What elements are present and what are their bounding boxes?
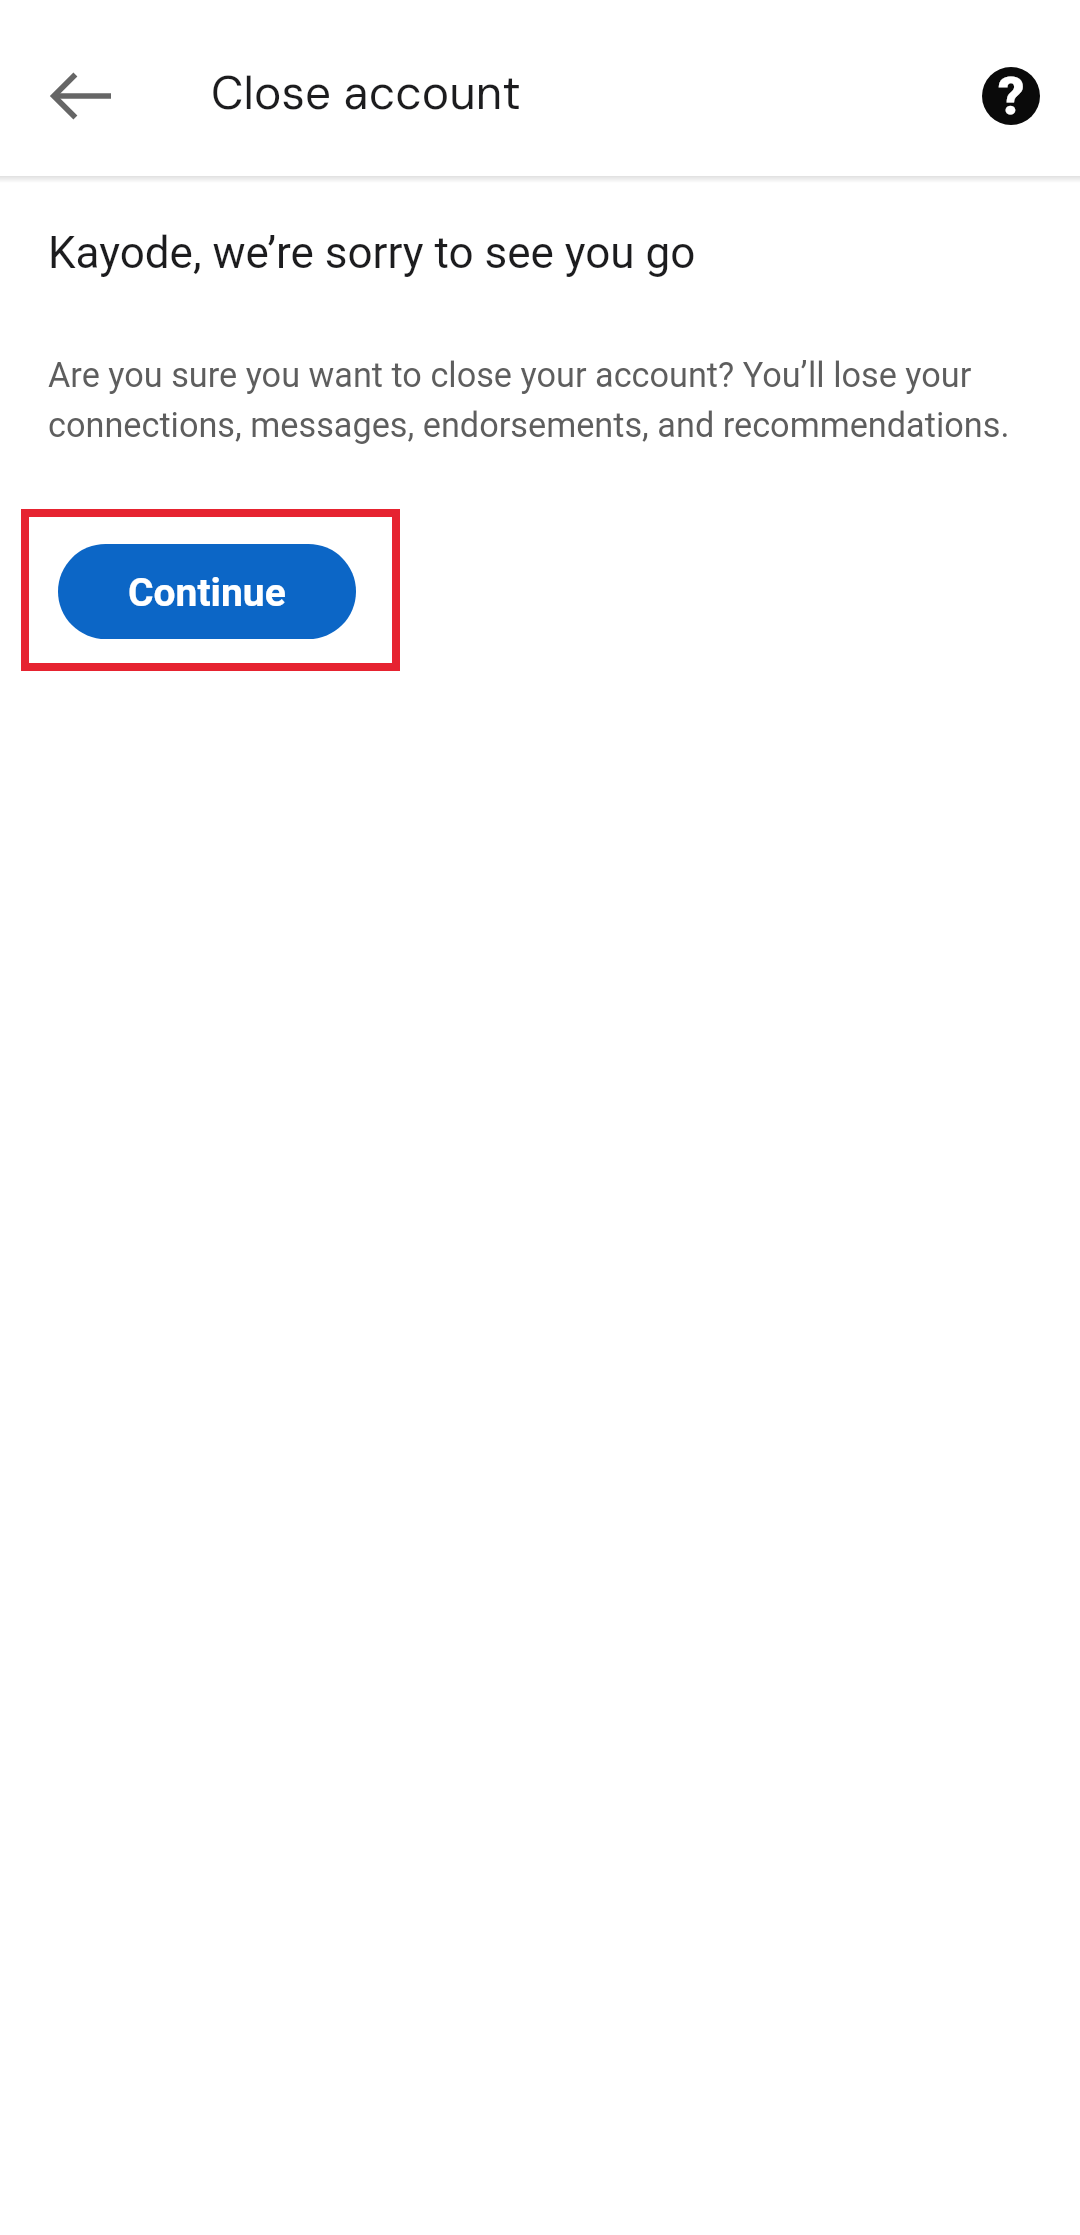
staticText: Close account: [211, 63, 521, 123]
button[interactable]: Back: [16, 32, 144, 160]
staticText: Continue: [128, 570, 286, 616]
staticText: Kayode, we’re sorry to see you go: [48, 227, 696, 279]
staticText: Are you sure you want to close your acco…: [48, 355, 1034, 445]
button[interactable]: Continue: [58, 544, 356, 639]
staticText: ?: [998, 66, 1025, 127]
button[interactable]: Help: [956, 41, 1066, 151]
